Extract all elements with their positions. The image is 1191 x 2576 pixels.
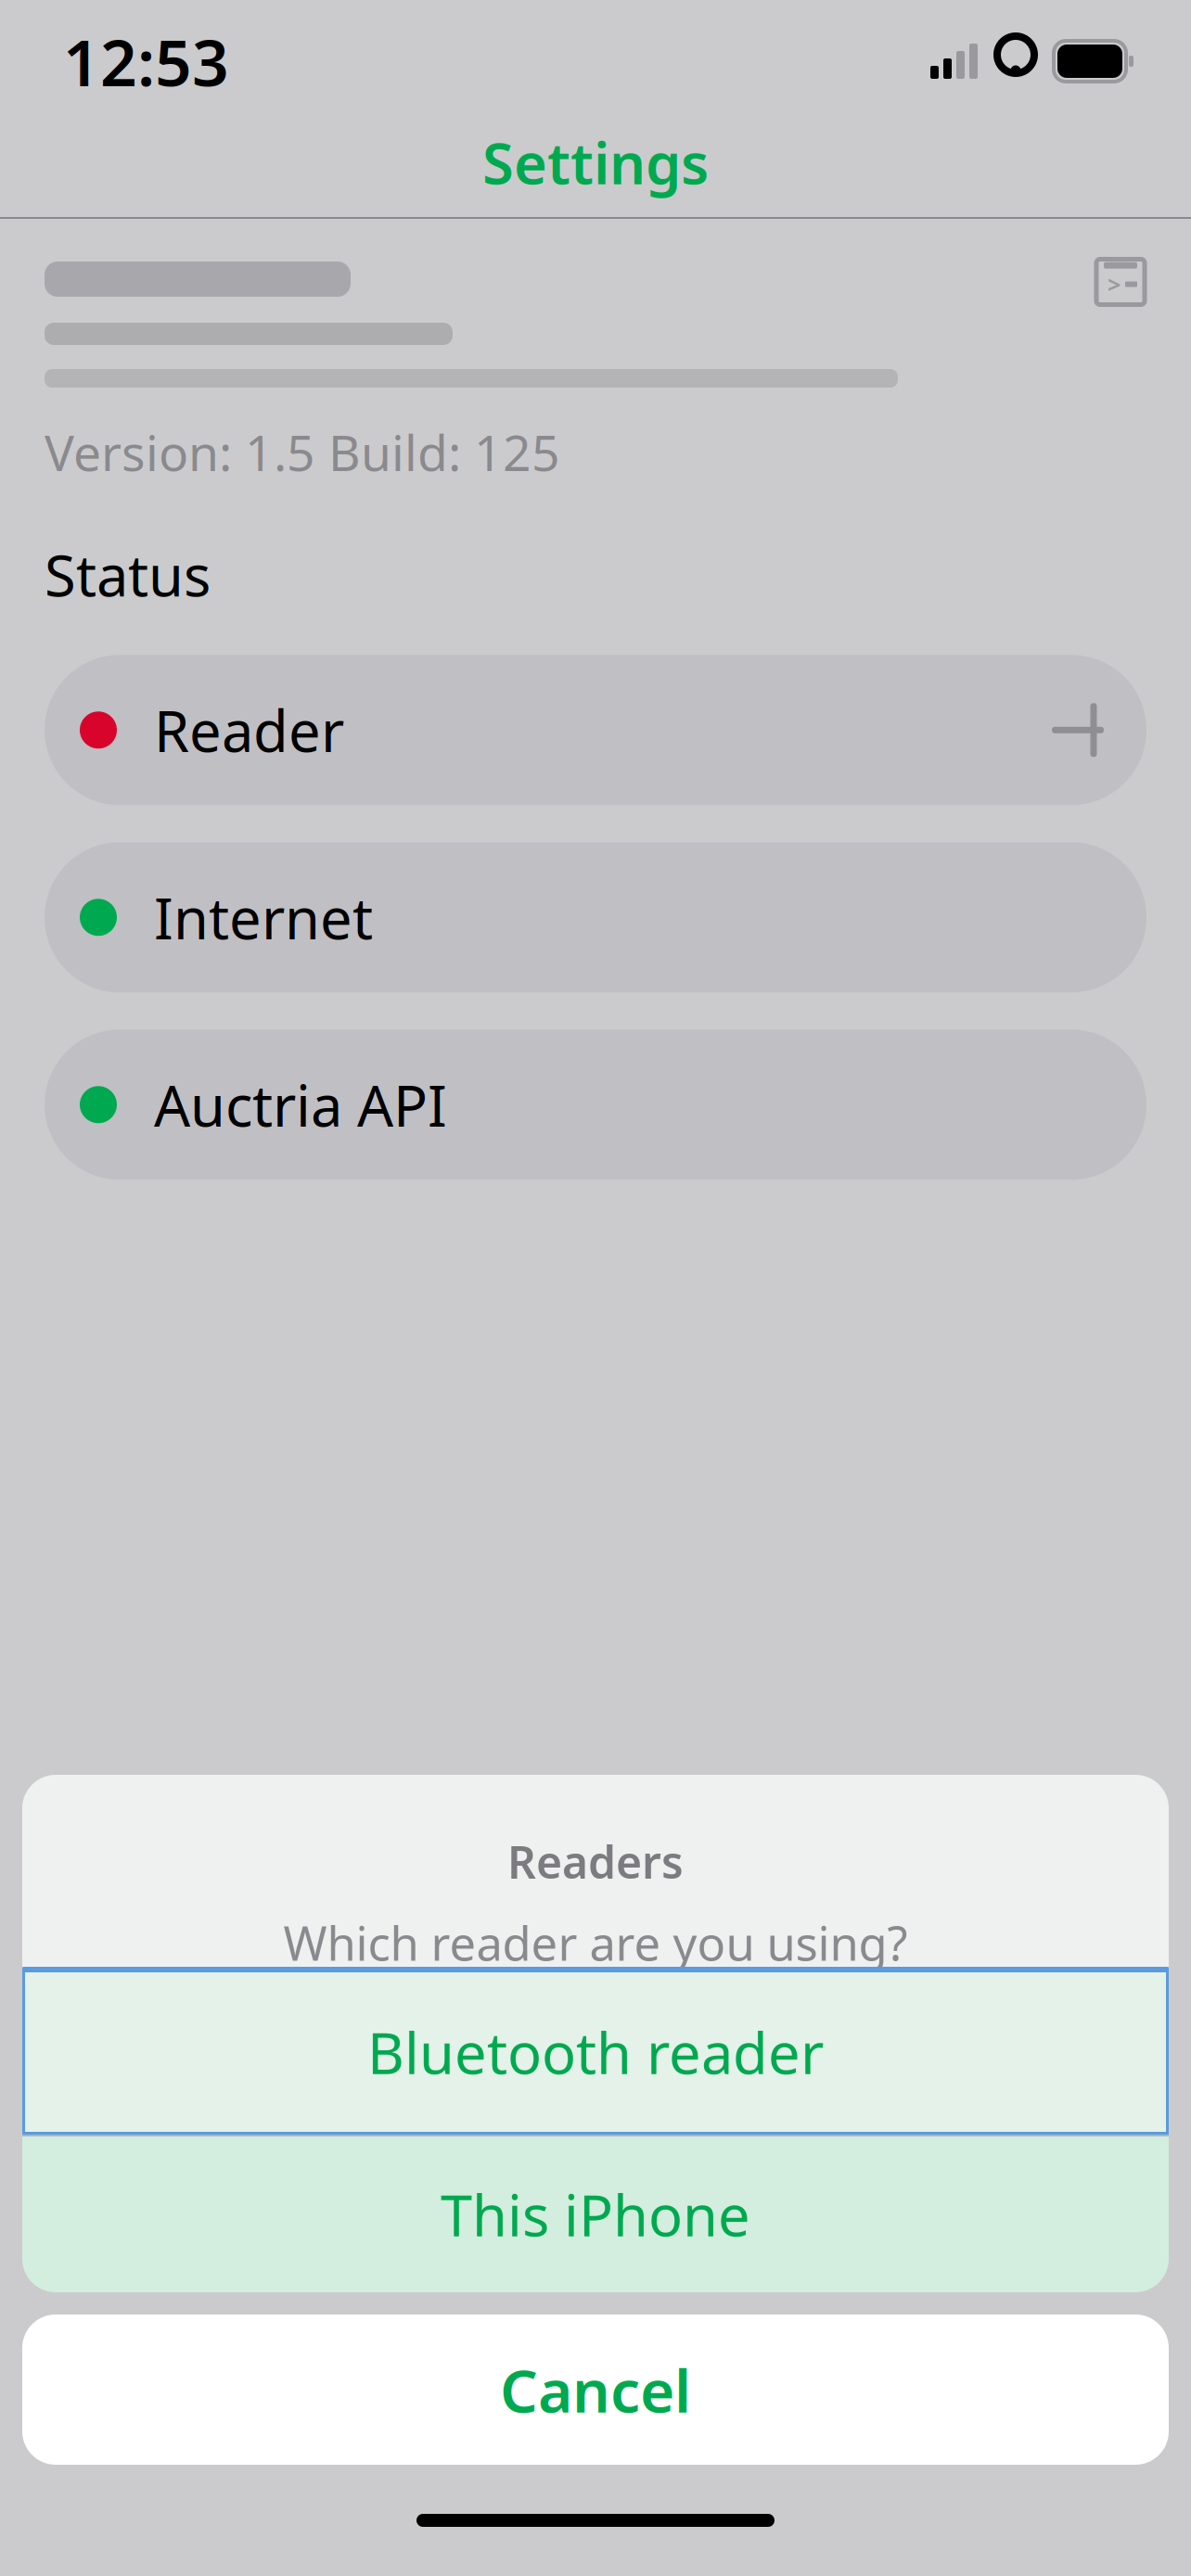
button[interactable]: Console bbox=[1083, 245, 1158, 319]
staticText: > bbox=[1108, 269, 1121, 300]
staticText: This iPhone bbox=[441, 2177, 750, 2252]
staticText: Readers bbox=[507, 1832, 684, 1891]
staticText: Settings bbox=[482, 125, 709, 200]
staticText: Auctria API bbox=[154, 1067, 447, 1142]
staticText: Bluetooth reader bbox=[367, 2014, 824, 2090]
staticText: Status bbox=[45, 537, 211, 612]
staticText: Which reader are you using? bbox=[283, 1911, 908, 1974]
button[interactable]: This iPhone bbox=[22, 2136, 1169, 2292]
button[interactable]: Reader bbox=[45, 655, 1146, 805]
button[interactable]: Auctria API bbox=[45, 1030, 1146, 1180]
staticText: 12:53 bbox=[63, 19, 229, 104]
staticText: Internet bbox=[154, 880, 373, 955]
button[interactable]: Internet bbox=[45, 842, 1146, 992]
staticText: Cancel bbox=[500, 2350, 691, 2429]
button[interactable]: Bluetooth reader bbox=[22, 1970, 1169, 2135]
button[interactable]: Cancel bbox=[22, 2315, 1169, 2465]
staticText: Version: 1.5 Build: 125 bbox=[45, 419, 560, 485]
staticText: Reader bbox=[154, 692, 344, 768]
